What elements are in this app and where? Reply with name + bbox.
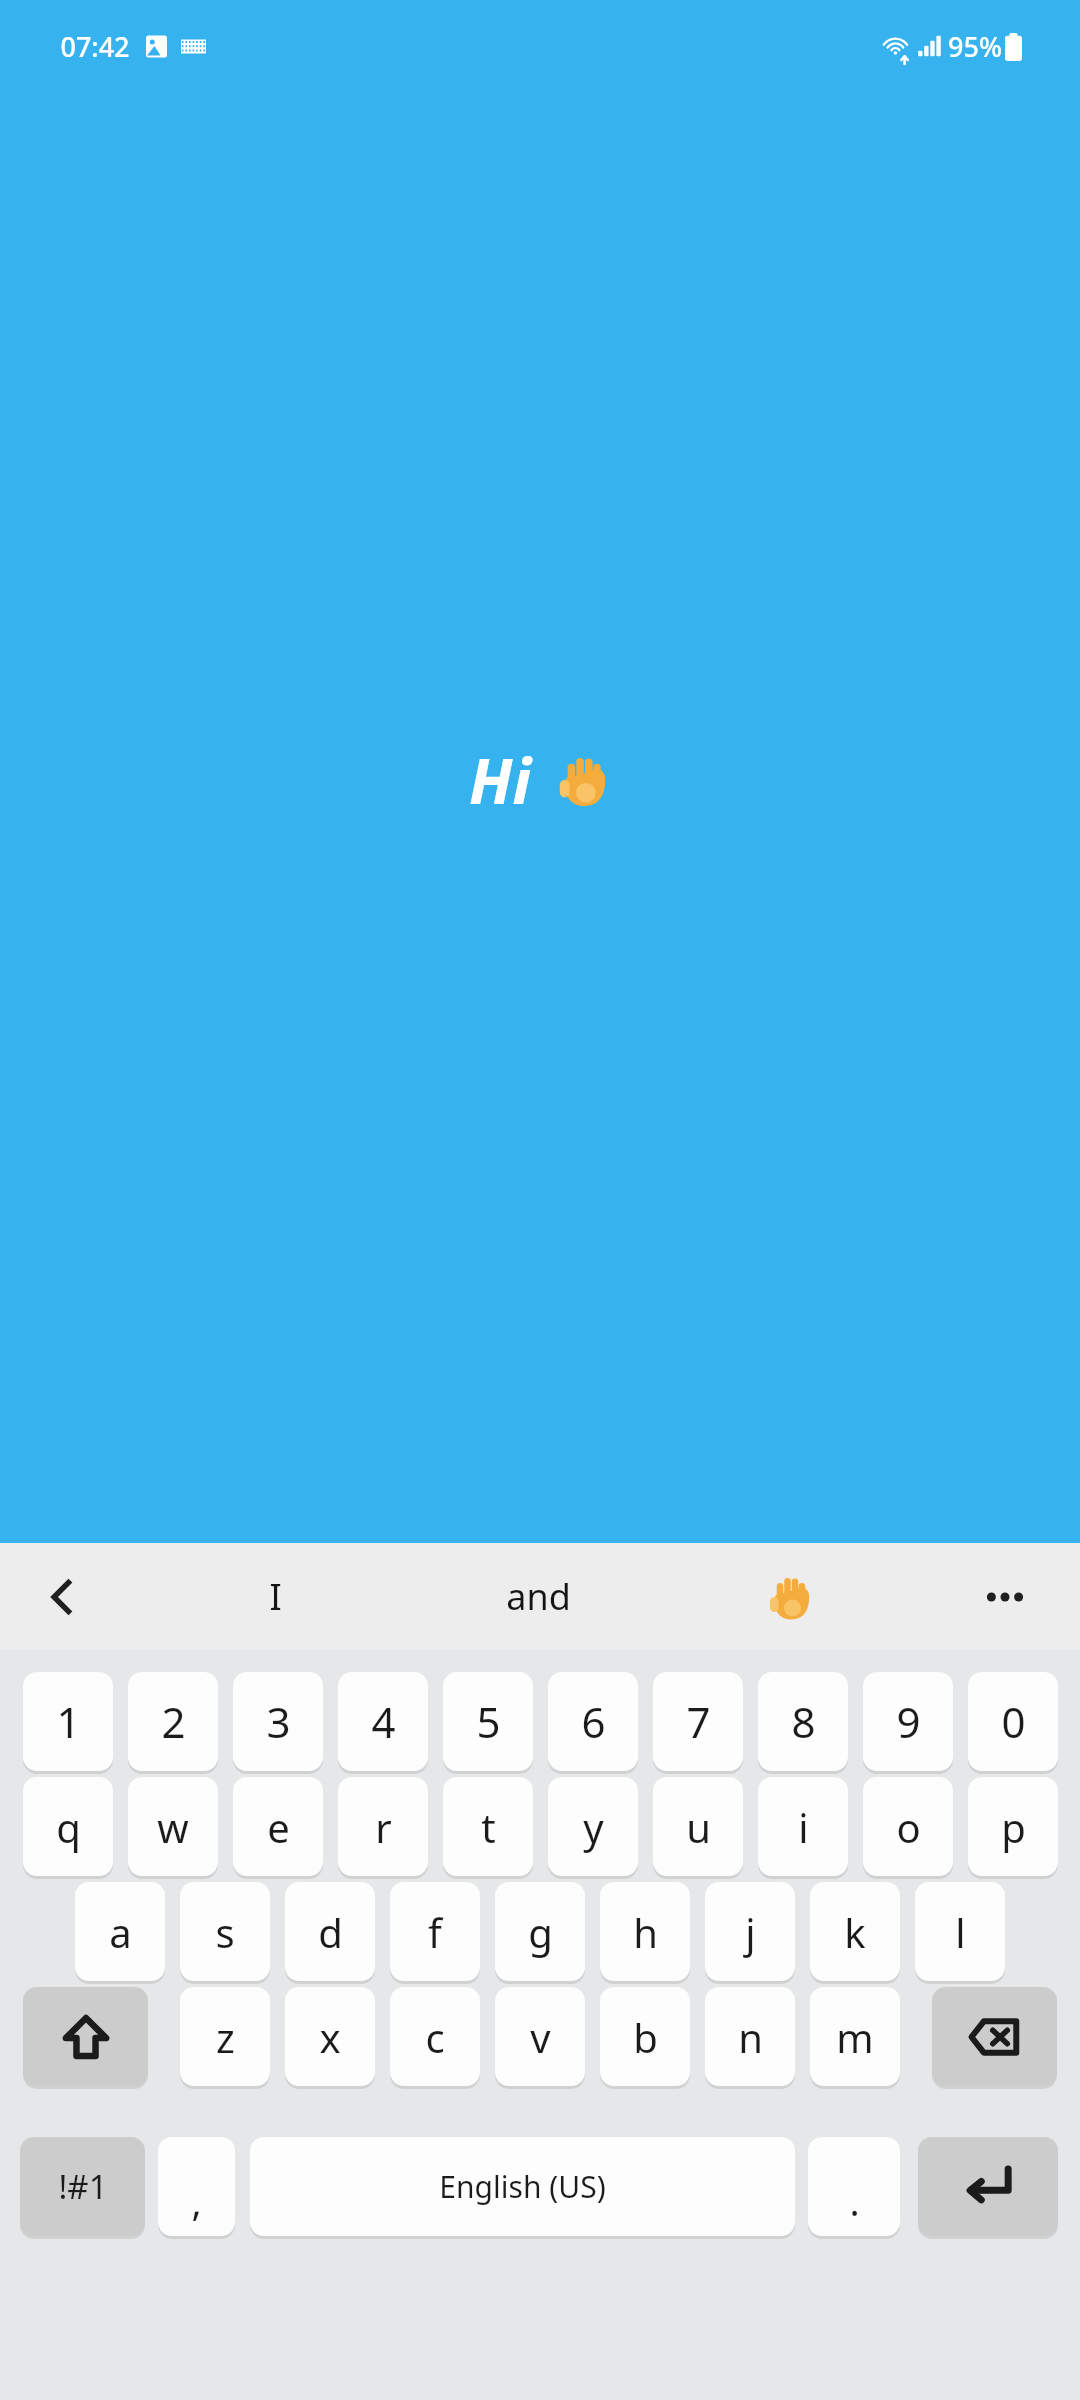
button[interactable]: and	[443, 1543, 633, 1650]
button[interactable]: More	[970, 1562, 1040, 1632]
staticText: 95%	[948, 28, 1002, 65]
button[interactable]: j	[705, 1882, 795, 1981]
staticText: n	[738, 2010, 763, 2064]
staticText: w	[157, 1800, 189, 1854]
button[interactable]: 6	[548, 1672, 638, 1771]
button[interactable]: u	[653, 1777, 743, 1876]
button[interactable]: 5	[443, 1672, 533, 1771]
button[interactable]: m	[810, 1987, 900, 2086]
staticText: I	[269, 1572, 282, 1621]
staticText: 2	[161, 1693, 186, 1750]
staticText: Hi	[469, 738, 532, 822]
button[interactable]: g	[495, 1882, 585, 1981]
button[interactable]: b	[600, 1987, 690, 2086]
button[interactable]: c	[390, 1987, 480, 2086]
button[interactable]: 9	[863, 1672, 953, 1771]
button[interactable]: i	[758, 1777, 848, 1876]
staticText: 5	[476, 1693, 501, 1750]
staticText: 8	[791, 1693, 816, 1750]
button[interactable]: Shift	[23, 1987, 148, 2086]
button[interactable]	[725, 1543, 855, 1650]
button[interactable]: Enter	[918, 2137, 1058, 2236]
staticText: 0	[1001, 1693, 1026, 1750]
button[interactable]: y	[548, 1777, 638, 1876]
button[interactable]: 8	[758, 1672, 848, 1771]
button[interactable]: r	[338, 1777, 428, 1876]
button[interactable]: ,	[158, 2137, 235, 2236]
button[interactable]: 1	[23, 1672, 113, 1771]
staticText: !#1	[58, 2164, 108, 2209]
staticText: and	[506, 1572, 571, 1621]
staticText: q	[56, 1800, 81, 1854]
staticText: f	[428, 1905, 442, 1959]
staticText: v	[530, 2010, 551, 2064]
staticText: h	[633, 1905, 658, 1959]
button[interactable]: Text style	[163, 1768, 235, 1840]
staticText: 4	[371, 1693, 396, 1750]
staticText: i	[798, 1800, 809, 1854]
button[interactable]: k	[810, 1882, 900, 1981]
button[interactable]: f	[390, 1882, 480, 1981]
button[interactable]: s	[180, 1882, 270, 1981]
button[interactable]: 3	[233, 1672, 323, 1771]
button[interactable]: Back	[30, 1565, 94, 1629]
staticText: d	[318, 1905, 343, 1959]
button[interactable]: q	[23, 1777, 113, 1876]
staticText: 9	[896, 1693, 921, 1750]
staticText: m	[836, 2010, 874, 2064]
button[interactable]: w	[128, 1777, 218, 1876]
button[interactable]: .	[808, 2137, 900, 2236]
button[interactable]: l	[915, 1882, 1005, 1981]
staticText: r	[375, 1800, 392, 1854]
button[interactable]: n	[705, 1987, 795, 2086]
staticText: 6	[581, 1693, 606, 1750]
button[interactable]: Send	[888, 1720, 1028, 1860]
staticText: o	[896, 1800, 921, 1854]
staticText: l	[955, 1905, 966, 1959]
staticText: u	[686, 1800, 711, 1854]
button[interactable]: I	[205, 1543, 345, 1650]
staticText: a	[109, 1905, 132, 1959]
button[interactable]: p	[968, 1777, 1058, 1876]
staticText: b	[633, 2010, 658, 2064]
button[interactable]: 4	[338, 1672, 428, 1771]
staticText: 3	[266, 1693, 291, 1750]
button[interactable]: 0	[968, 1672, 1058, 1771]
staticText: s	[215, 1905, 235, 1959]
button[interactable]: e	[233, 1777, 323, 1876]
staticText: e	[267, 1800, 290, 1854]
button[interactable]: v	[495, 1987, 585, 2086]
staticText: ,	[191, 2175, 202, 2227]
button[interactable]: English (US)	[250, 2137, 795, 2236]
button[interactable]: t	[443, 1777, 533, 1876]
staticText: .	[849, 2175, 860, 2227]
button[interactable]: a	[75, 1882, 165, 1981]
button[interactable]: Emoji	[55, 1768, 127, 1840]
staticText: t	[481, 1800, 496, 1854]
button[interactable]: d	[285, 1882, 375, 1981]
staticText: 7	[686, 1693, 711, 1750]
staticText: y	[583, 1800, 604, 1854]
staticText: g	[528, 1905, 553, 1959]
staticText: k	[844, 1905, 866, 1959]
staticText: j	[745, 1905, 756, 1959]
button[interactable]: x	[285, 1987, 375, 2086]
staticText: 1	[56, 1693, 81, 1750]
button[interactable]: Backspace	[932, 1987, 1057, 2086]
staticText: 07:42	[60, 28, 130, 65]
staticText: z	[216, 2010, 235, 2064]
button[interactable]: o	[863, 1777, 953, 1876]
staticText: p	[1001, 1800, 1026, 1854]
button[interactable]: !#1	[20, 2137, 145, 2236]
button[interactable]: 7	[653, 1672, 743, 1771]
button[interactable]: z	[180, 1987, 270, 2086]
button[interactable]: 2	[128, 1672, 218, 1771]
staticText: English (US)	[439, 2166, 606, 2207]
staticText: x	[319, 2010, 341, 2064]
staticText: c	[425, 2010, 445, 2064]
button[interactable]: h	[600, 1882, 690, 1981]
